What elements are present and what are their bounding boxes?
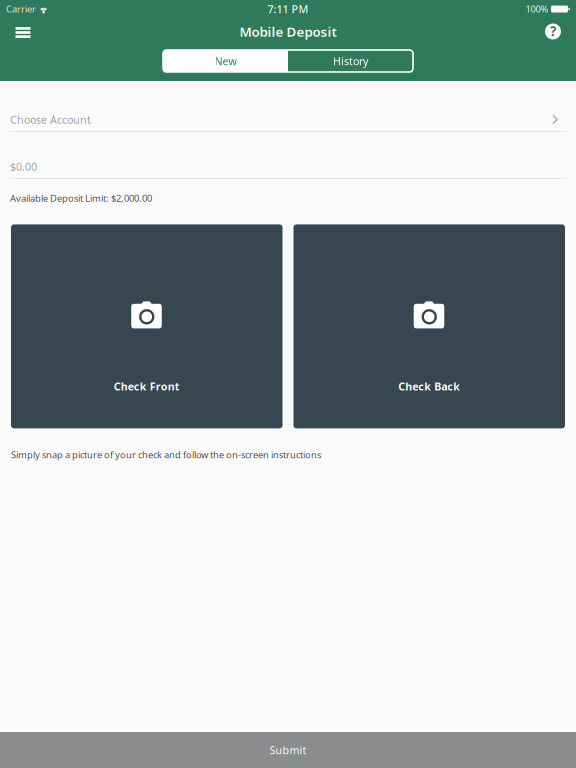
staticText: New [214, 54, 236, 68]
staticText: Carrier [6, 3, 36, 15]
button[interactable]: Check Front [11, 224, 282, 428]
staticText: Check Front [114, 379, 180, 394]
button[interactable]: Menu [4, 20, 42, 47]
staticText: Mobile Deposit [239, 23, 336, 40]
staticText: Simply snap a picture of your check and … [11, 448, 321, 461]
button[interactable]: Help [534, 20, 572, 47]
staticText: History [333, 54, 368, 68]
staticText: 100% [525, 3, 548, 15]
button[interactable]: Check Back [293, 224, 565, 428]
button[interactable]: History [288, 50, 413, 72]
staticText: Submit [269, 743, 306, 757]
staticText: Available Deposit Limit: $2,000.00 [10, 192, 152, 204]
staticText: Choose Account [10, 112, 91, 127]
staticText: Check Back [398, 379, 460, 394]
staticText: 7:11 PM [267, 2, 308, 16]
button[interactable]: Submit [0, 732, 576, 768]
staticText: $0.00 [10, 159, 37, 174]
button[interactable]: New [163, 50, 288, 72]
button[interactable]: Choose Account [0, 81, 576, 132]
staticText: ? [550, 22, 556, 40]
